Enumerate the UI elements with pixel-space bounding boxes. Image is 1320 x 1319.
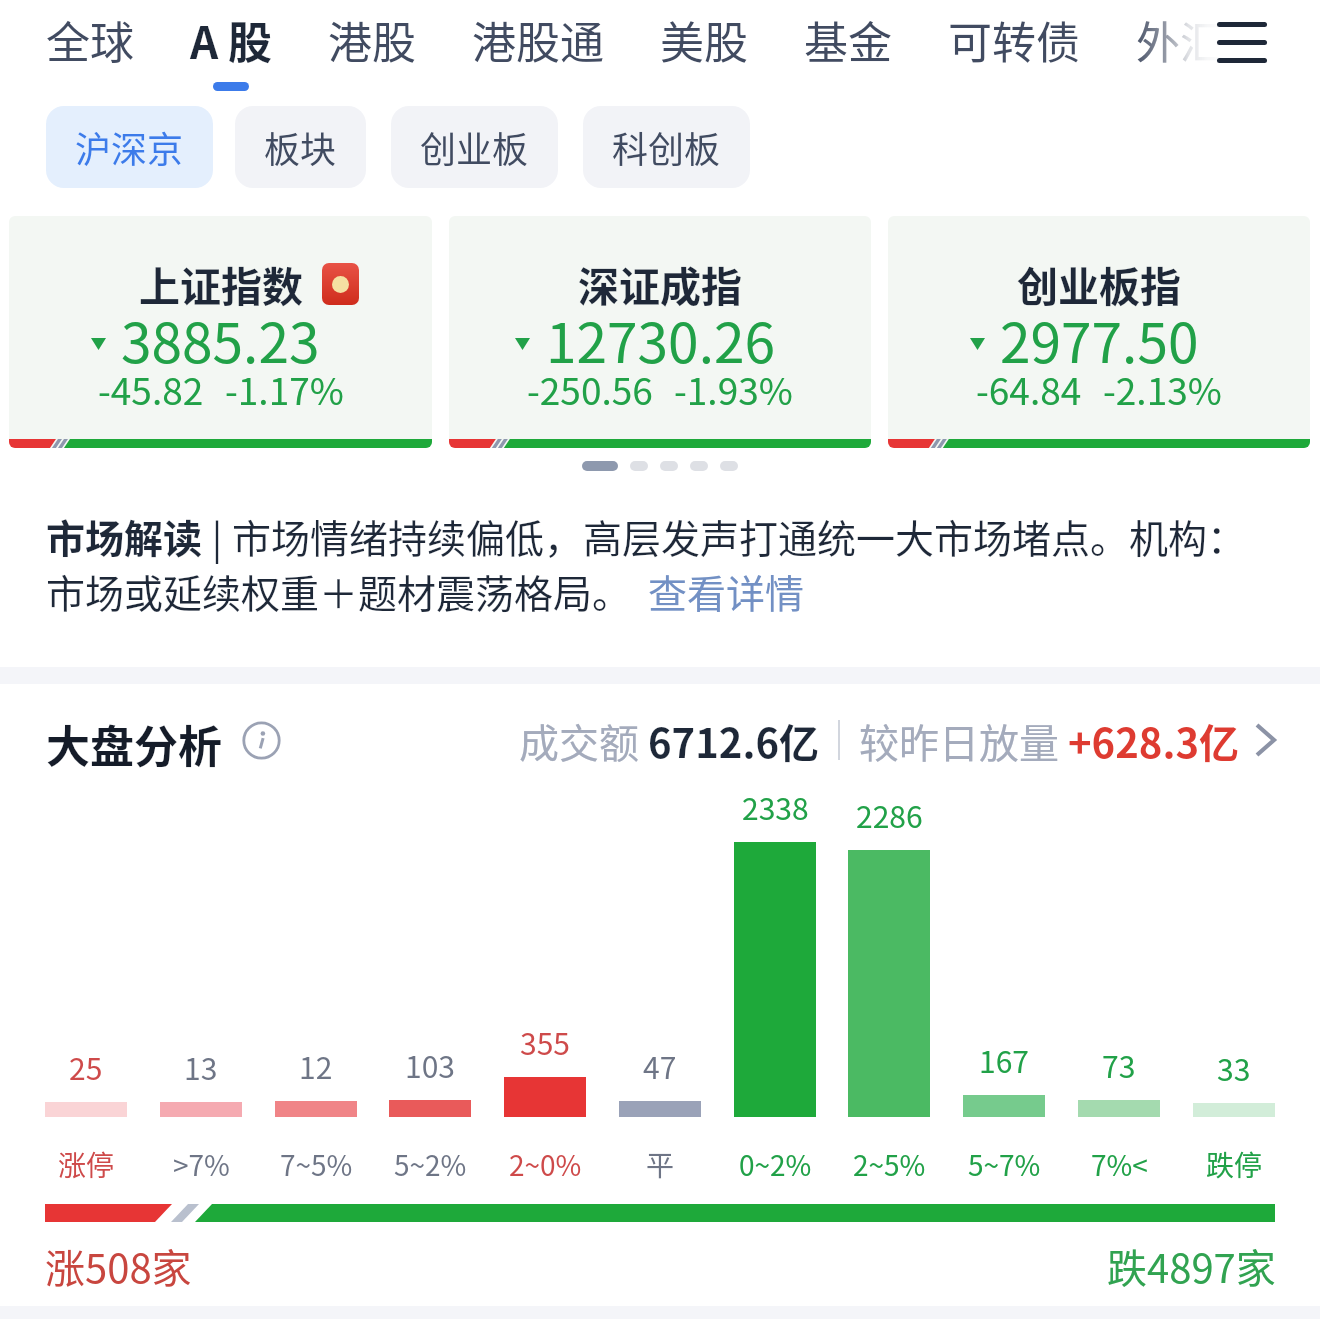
staticText: 科创板 — [612, 121, 721, 173]
staticText: 12730.26 — [546, 299, 775, 379]
staticText: -1.93% — [674, 362, 793, 416]
staticText: 2~5% — [853, 1144, 926, 1185]
staticText: 7~5% — [280, 1144, 353, 1185]
button[interactable]: 全球 — [46, 8, 134, 102]
staticText: 0~2% — [739, 1144, 812, 1185]
staticText: 大盘分析 — [46, 712, 222, 768]
staticText: | — [203, 508, 232, 564]
staticText: 创业板指 — [1017, 254, 1181, 313]
button[interactable]: 0~2% 2338 — [718, 800, 832, 1180]
staticText: 较昨日放量 — [859, 712, 1068, 768]
staticText: 5~2% — [394, 1144, 467, 1185]
staticText: 市场情绪持续偏低，高层发声打通统一大市场堵点。机构： — [232, 508, 1247, 564]
staticText: 103 — [405, 1043, 455, 1086]
staticText: 市场或延续权重＋题材震荡格局。 — [46, 563, 632, 619]
button[interactable]: >7% 13 — [144, 800, 258, 1180]
staticText: 涨508家 — [45, 1237, 192, 1295]
staticText: 沪深京 — [75, 121, 184, 173]
staticText: 外汇 — [1136, 8, 1224, 72]
button[interactable]: 板块 — [235, 106, 366, 188]
staticText: 2338 — [742, 785, 809, 828]
button[interactable]: 外汇 — [1136, 8, 1224, 102]
button[interactable]: Page 1 — [582, 461, 618, 471]
button[interactable]: 创业板 — [391, 106, 558, 188]
button[interactable]: 涨停 25 — [29, 800, 143, 1180]
staticText: 基金 — [804, 8, 892, 72]
staticText: 创业板 — [420, 121, 529, 173]
button[interactable]: A — [190, 8, 272, 102]
staticText: +628.3亿 — [1068, 712, 1239, 768]
staticText: -2.13% — [1103, 362, 1222, 416]
button[interactable]: 5~7% 167 — [947, 800, 1061, 1180]
staticText: -45.82 — [98, 362, 204, 416]
button[interactable]: 可转债 — [948, 8, 1080, 102]
staticText: -250.56 — [527, 362, 653, 416]
button[interactable]: Page 2 — [630, 461, 648, 471]
staticText: 平 — [646, 1144, 675, 1185]
staticText: A — [190, 8, 219, 72]
staticText: >7% — [173, 1144, 230, 1185]
staticText: -64.84 — [976, 362, 1082, 416]
staticText: 板块 — [264, 121, 337, 173]
staticText: 市场解读 — [46, 508, 203, 564]
button[interactable]: 沪深京 — [46, 106, 213, 188]
staticText: 6712.6亿 — [648, 712, 819, 768]
button[interactable]: 成交额 — [519, 712, 1276, 768]
button[interactable]: 2~0% 355 — [488, 800, 602, 1180]
button[interactable]: Page 3 — [660, 461, 678, 471]
staticText: 深证成指 — [578, 254, 742, 313]
staticText: -1.17% — [225, 362, 344, 416]
staticText: 跌4897家 — [1107, 1237, 1276, 1295]
staticText: 355 — [520, 1020, 570, 1063]
staticText: 可转债 — [948, 8, 1080, 72]
staticText: 2286 — [856, 793, 923, 836]
staticText: 73 — [1102, 1043, 1136, 1086]
button[interactable]: 7~5% 12 — [259, 800, 373, 1180]
button[interactable]: 上证指数 — [9, 216, 432, 448]
button[interactable]: 大盘分析 — [46, 712, 281, 768]
staticText: 港股通 — [472, 8, 604, 72]
button[interactable]: 创业板指 — [888, 216, 1310, 448]
button[interactable]: Page 4 — [690, 461, 708, 471]
staticText: 成交额 — [519, 712, 648, 768]
staticText: 3885.23 — [121, 299, 320, 379]
staticText: 47 — [643, 1044, 677, 1087]
button[interactable]: 5~2% 103 — [373, 800, 487, 1180]
button[interactable]: 平 47 — [603, 800, 717, 1180]
button[interactable]: 科创板 — [583, 106, 750, 188]
button[interactable]: 深证成指 — [449, 216, 871, 448]
staticText: 13 — [184, 1045, 218, 1088]
staticText: 7%< — [1091, 1144, 1148, 1185]
staticText: 股 — [228, 8, 272, 72]
staticText: 2977.50 — [1000, 299, 1199, 379]
button[interactable]: Menu — [1197, 2, 1287, 82]
staticText: 上证指数 — [139, 254, 303, 313]
staticText: 跌停 — [1206, 1144, 1263, 1185]
button[interactable]: Page 5 — [720, 461, 738, 471]
staticText: 美股 — [660, 8, 748, 72]
staticText: 涨停 — [58, 1144, 115, 1185]
button[interactable]: 2~5% 2286 — [832, 800, 946, 1180]
staticText: 167 — [979, 1038, 1029, 1081]
staticText: 33 — [1217, 1046, 1251, 1089]
staticText: 全球 — [46, 8, 134, 72]
staticText: 25 — [69, 1045, 103, 1088]
button[interactable]: 港股 — [328, 8, 416, 102]
button[interactable]: 7%< 73 — [1062, 800, 1176, 1180]
staticText: 2~0% — [509, 1144, 582, 1185]
staticText: 5~7% — [968, 1144, 1041, 1185]
staticText: 港股 — [328, 8, 416, 72]
button[interactable]: 基金 — [804, 8, 892, 102]
button[interactable]: 美股 — [660, 8, 748, 102]
button[interactable]: 查看详情 — [648, 563, 805, 619]
staticText: 12 — [299, 1044, 333, 1087]
button[interactable]: 跌停 33 — [1177, 800, 1291, 1180]
button[interactable]: 港股通 — [472, 8, 604, 102]
